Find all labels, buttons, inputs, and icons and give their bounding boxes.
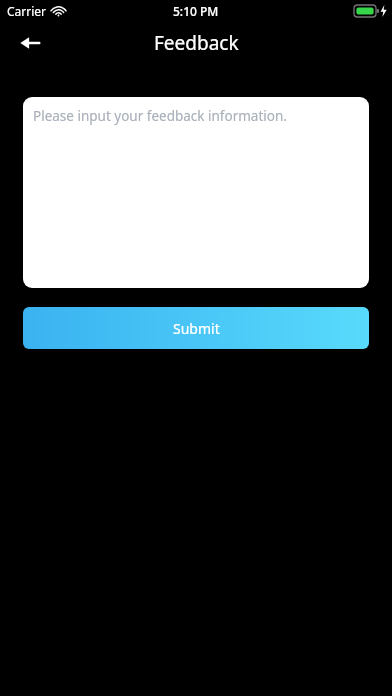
staticText: Feedback xyxy=(154,30,239,56)
staticText: 5:10 PM xyxy=(173,3,219,19)
button[interactable]: Back xyxy=(10,23,50,63)
staticText: Carrier xyxy=(7,3,47,19)
button[interactable]: Please input your feedback information. xyxy=(23,97,369,288)
staticText: Submit xyxy=(173,319,220,338)
button[interactable]: Submit xyxy=(23,307,369,349)
staticText: Please input your feedback information. xyxy=(33,107,287,125)
